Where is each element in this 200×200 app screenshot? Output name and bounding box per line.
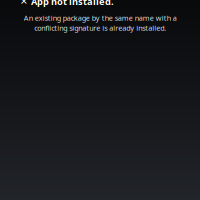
staticText: An existing package by the same name wit… <box>23 13 176 33</box>
staticText: ✕ <box>20 0 28 7</box>
staticText: App not installed. <box>31 0 114 8</box>
